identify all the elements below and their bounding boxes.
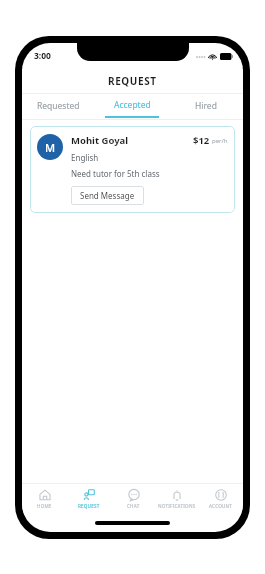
staticText: English [71,152,99,163]
staticText: CHAT [127,503,140,509]
staticText: Mohit Goyal [71,134,193,147]
button[interactable]: Requested [22,94,95,119]
staticText: Need tutor for 5th class [71,168,160,179]
button[interactable]: ACCOUNT [199,484,243,514]
button[interactable]: Send Message [71,186,144,205]
button[interactable]: M [30,126,235,213]
staticText: per/h [212,137,228,145]
staticText: 3:00 [34,50,51,62]
staticText: REQUEST [78,503,100,509]
staticText: Hired [195,100,217,112]
staticText: Send Message [80,190,135,201]
staticText: $12 [193,134,210,147]
staticText: M [45,140,56,155]
button[interactable]: CHAT [111,484,155,514]
staticText: NOTIFICATIONS [158,503,196,509]
button[interactable]: HOME [22,484,67,514]
staticText: Requested [37,100,80,112]
button[interactable]: Accepted [95,94,169,119]
staticText: REQUEST [108,74,157,88]
button[interactable]: REQUEST [67,484,111,514]
staticText: ACCOUNT [209,503,233,509]
button[interactable]: Hired [169,94,243,119]
staticText: HOME [37,503,52,509]
button[interactable]: NOTIFICATIONS [155,484,199,514]
staticText: Accepted [114,99,151,111]
